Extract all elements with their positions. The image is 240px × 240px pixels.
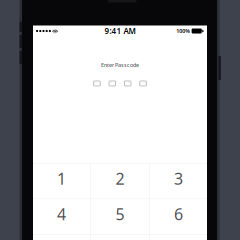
staticText: 1 bbox=[57, 168, 66, 189]
button[interactable]: 1 bbox=[32, 164, 90, 199]
staticText: 2 bbox=[115, 168, 124, 189]
staticText: 9:41 AM bbox=[104, 26, 135, 36]
staticText: 100% bbox=[176, 27, 190, 35]
staticText: 5 bbox=[115, 203, 124, 225]
button[interactable]: 4 bbox=[32, 199, 90, 234]
button[interactable]: 9 bbox=[150, 235, 208, 240]
staticText: 3 bbox=[174, 168, 183, 189]
button[interactable]: 6 bbox=[150, 199, 208, 234]
staticText: Enter Passcode bbox=[101, 61, 139, 69]
button[interactable]: 7 bbox=[32, 235, 90, 240]
button[interactable]: 3 bbox=[150, 164, 208, 199]
staticText: 6 bbox=[174, 203, 183, 225]
button[interactable]: 5 bbox=[91, 199, 149, 234]
button[interactable]: 2 bbox=[91, 164, 149, 199]
staticText: 4 bbox=[57, 203, 66, 225]
